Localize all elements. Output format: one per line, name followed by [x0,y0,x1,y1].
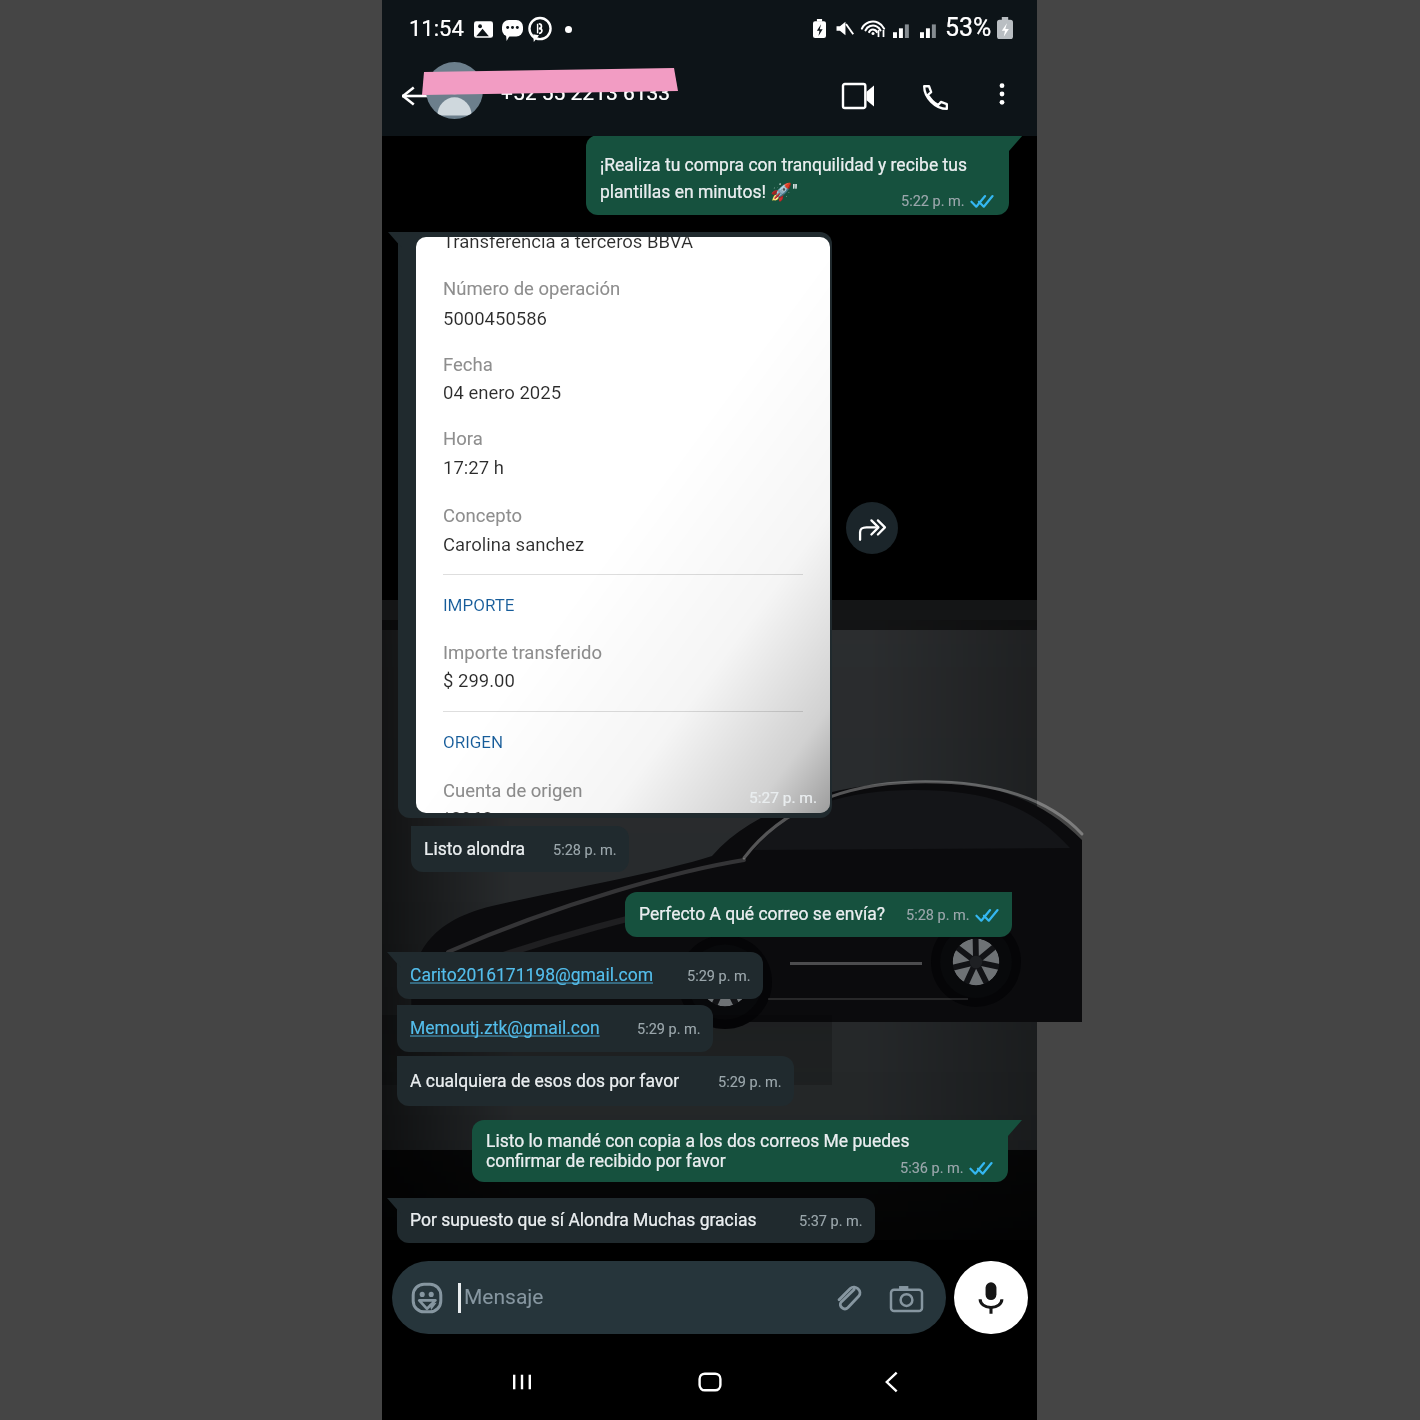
button[interactable]: Carito2016171198@gmail.com [397,952,763,999]
staticText: Hora [443,428,483,450]
staticText: Número de operación [443,278,621,300]
staticText: 5:27 p. m. [749,789,818,807]
staticText: Cuenta de origen [443,780,583,802]
staticText: Transferencia a terceros BBVA [443,237,693,253]
button[interactable]: Attach [830,1280,866,1316]
staticText: confirmar de recibido por favor [486,1151,726,1172]
button[interactable]: +52 55 2213 6133 [501,66,821,120]
button[interactable]: Transferencia a terceros BBVA [398,232,832,818]
staticText: Concepto [443,505,523,527]
staticText: *3968 [443,808,493,813]
staticText: $ 299.00 [443,670,515,692]
button[interactable]: Listo lo mandé con copia a los dos corre… [472,1120,1008,1182]
button[interactable]: A cualquiera de esos dos por favor [397,1056,794,1106]
button[interactable]: Home [680,1352,740,1412]
button[interactable]: Video call [834,72,882,120]
staticText: Carolina sanchez [443,534,585,556]
staticText: Carito2016171198@gmail.com [410,965,654,986]
button[interactable]: Back [862,1352,922,1412]
button[interactable]: Forward [846,502,898,554]
staticText: 11:54 [409,16,464,42]
staticText: Fecha [443,354,493,376]
button[interactable]: Back [392,72,440,120]
staticText: 5:28 p. m. [906,907,970,924]
staticText: 5000450586 [443,308,547,330]
button[interactable]: Contact photo [426,62,483,119]
staticText: IMPORTE [443,595,515,615]
staticText: Memoutj.ztk@gmail.con [410,1018,600,1039]
staticText: 5:36 p. m. [900,1160,964,1177]
staticText: 5:22 p. m. [901,193,965,210]
button[interactable]: Voice call [911,72,959,120]
staticText: Por supuesto que sí Alondra Muchas graci… [410,1210,757,1231]
staticText: Perfecto A qué correo se envía? [639,904,886,925]
button[interactable]: Mensaje [392,1261,946,1334]
staticText: 5:29 p. m. [687,968,751,985]
staticText: A cualquiera de esos dos por favor [410,1071,680,1092]
button[interactable]: ¡Realiza tu compra con tranquilidad y re… [586,135,1009,215]
staticText: Listo alondra [424,839,525,860]
staticText: 5:37 p. m. [799,1213,863,1230]
staticText: 5:29 p. m. [637,1021,701,1038]
button[interactable]: Voice message [954,1261,1028,1334]
staticText: ORIGEN [443,732,504,752]
staticText: Listo lo mandé con copia a los dos corre… [486,1131,910,1152]
button[interactable]: Camera [888,1280,924,1316]
button[interactable]: Perfecto A qué correo se envía? [625,892,1012,937]
staticText: Importe transferido [443,642,602,664]
staticText: plantillas en minutos! 🚀" [600,182,798,203]
staticText: Mensaje [464,1285,544,1310]
staticText: +52 55 2213 6133 [501,81,671,106]
button[interactable]: Recent apps [492,1352,552,1412]
button[interactable]: Listo alondra [411,826,629,872]
staticText: ¡Realiza tu compra con tranquilidad y re… [600,155,967,176]
staticText: 17:27 h [443,457,504,479]
button[interactable]: More options [980,72,1024,116]
staticText: 5:29 p. m. [718,1074,782,1091]
button[interactable]: Por supuesto que sí Alondra Muchas graci… [397,1198,875,1243]
button[interactable]: Memoutj.ztk@gmail.con [397,1005,713,1052]
staticText: 5:28 p. m. [553,842,617,859]
staticText: 53% [945,13,992,42]
staticText: 04 enero 2025 [443,382,562,404]
